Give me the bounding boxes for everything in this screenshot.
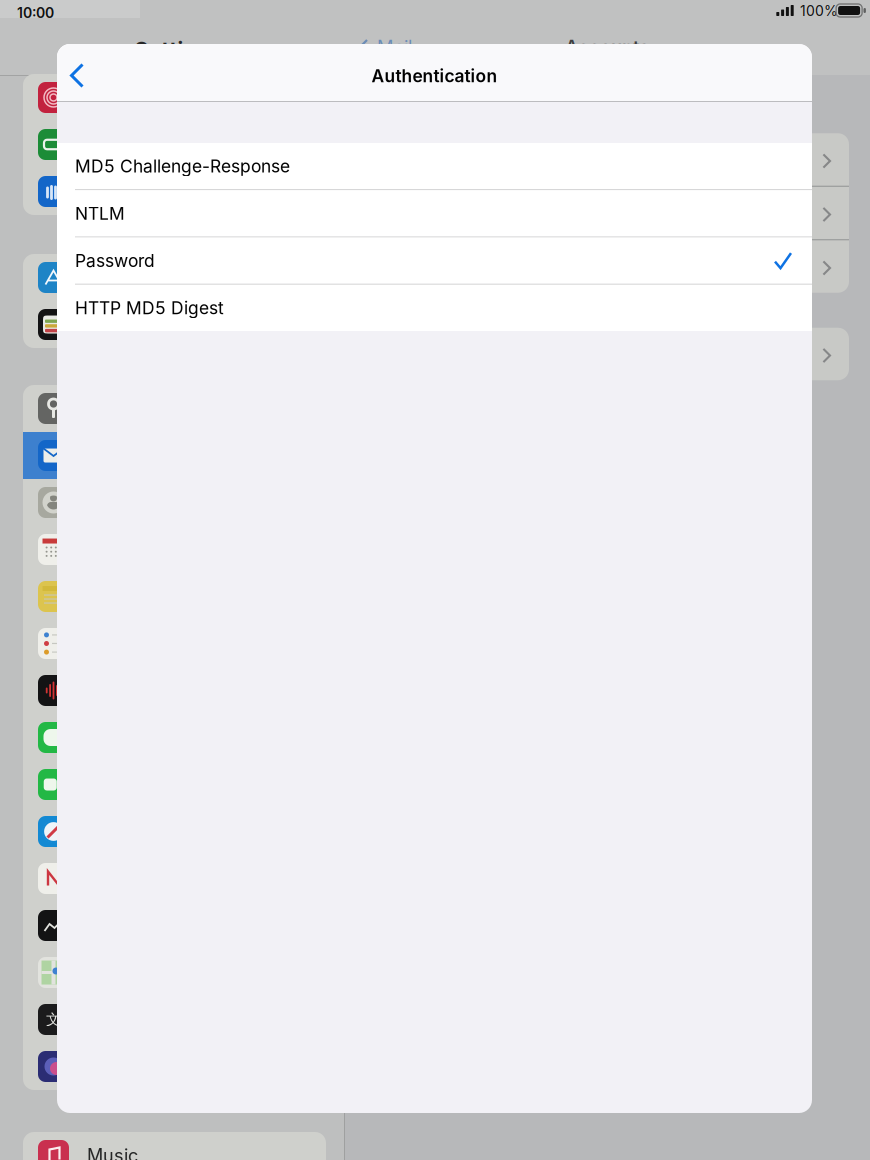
button[interactable]: Touch ID & Passcode [23,74,326,121]
button[interactable]: News [23,855,326,902]
button[interactable]: FaceTime [23,761,326,808]
staticText: NTLM [75,203,125,224]
staticText: Mail [377,36,412,58]
staticText: Accounts [565,36,649,58]
button[interactable]: Account [366,187,849,239]
button[interactable]: Contacts [23,479,326,526]
button[interactable]: 文 [23,996,326,1043]
button[interactable]: Maps [23,949,326,996]
button[interactable]: Password [57,237,812,284]
button[interactable]: NTLM [57,190,812,236]
button[interactable]: Back [57,44,97,102]
button[interactable]: Privacy & Security [23,168,326,215]
button[interactable]: Safari [23,808,326,855]
staticText: Password [75,250,155,271]
button[interactable]: Mail [360,36,470,58]
staticText: Authentication [371,65,497,86]
staticText: 文 [46,1010,61,1029]
button[interactable]: Account [366,240,849,293]
button[interactable]: MD5 Challenge-Response [57,143,812,189]
button[interactable]: Battery [23,121,326,168]
button[interactable]: Photos [23,1043,326,1090]
staticText: App Store [87,267,171,288]
staticText: 100% [800,2,838,19]
button[interactable]: Stocks [23,902,326,949]
staticText: HTTP MD5 Digest [75,297,224,318]
button[interactable]: Account [366,328,849,380]
button[interactable]: Reminders [23,620,326,667]
button[interactable]: Passwords [23,385,326,432]
button[interactable]: Music [23,1132,326,1160]
button[interactable]: HTTP MD5 Digest [57,285,812,331]
button[interactable]: Voice Memos [23,667,326,714]
button[interactable]: Notes [23,573,326,620]
button[interactable]: Mail [23,432,326,479]
button[interactable]: App Store [23,254,326,301]
staticText: Music [87,1145,138,1160]
staticText: MD5 Challenge-Response [75,156,290,177]
staticText: Privacy & Security [87,181,241,202]
staticText: 10:00 [17,4,54,21]
button[interactable]: Account [366,133,849,186]
staticText: Wallet & Apple Pay [87,314,244,335]
staticText: Touch ID & Passcode [87,87,268,108]
staticText: Battery [87,134,147,155]
staticText: Settings [134,37,221,63]
button[interactable]: Wallet & Apple Pay [23,301,326,348]
button[interactable]: Calendar [23,526,326,573]
button[interactable]: Messages [23,714,326,761]
